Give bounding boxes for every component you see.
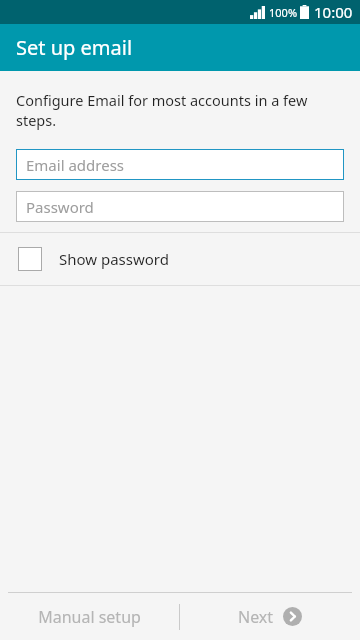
- button[interactable]: Show password: [0, 233, 360, 285]
- button[interactable]: Manual setup: [0, 593, 179, 640]
- staticText: Next: [238, 606, 274, 628]
- button[interactable]: Next: [180, 593, 360, 640]
- staticText: 10:00: [314, 2, 353, 22]
- staticText: Manual setup: [38, 606, 141, 628]
- other: Next: [283, 607, 302, 626]
- staticText: Set up email: [16, 34, 133, 61]
- staticText: Configure Email for most accounts in a f…: [16, 90, 342, 131]
- button[interactable]: Email address: [16, 149, 344, 180]
- staticText: 100%: [269, 5, 298, 20]
- button[interactable]: Password: [16, 191, 344, 222]
- staticText: Email address: [26, 155, 125, 175]
- staticText: Password: [26, 197, 94, 217]
- staticText: Show password: [59, 249, 169, 269]
